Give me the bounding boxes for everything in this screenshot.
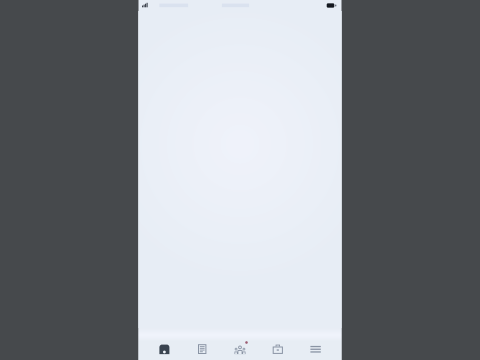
button[interactable]: Home — [145, 338, 183, 360]
button[interactable]: Feed — [183, 338, 221, 360]
button[interactable]: Jobs — [259, 338, 297, 360]
button[interactable]: More — [297, 338, 334, 360]
button[interactable]: My Network — [221, 338, 259, 360]
